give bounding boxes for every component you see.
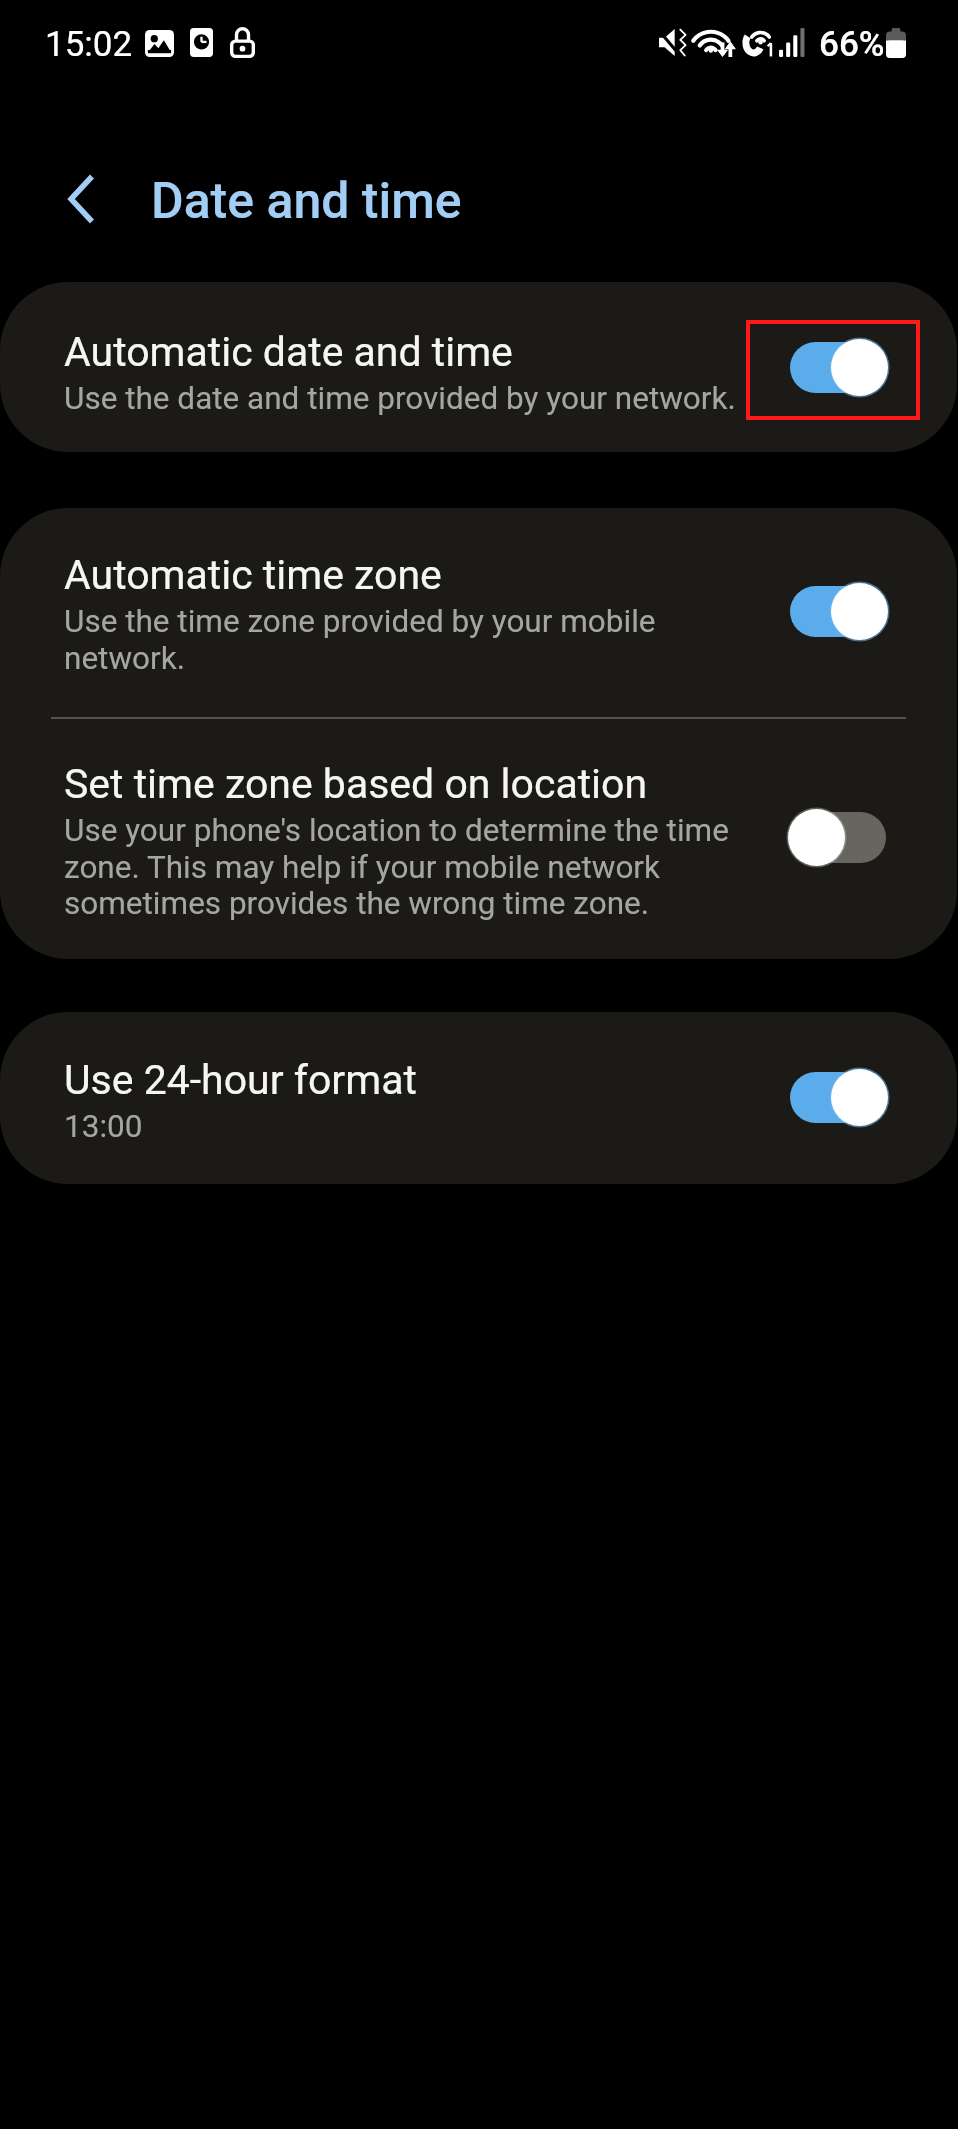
staticText: Automatic date and time: [64, 328, 513, 376]
staticText: Use your phone's location to determine t…: [64, 812, 764, 921]
button[interactable]: Use 24-hour format: [0, 1012, 957, 1184]
button[interactable]: Automatic date and time: [0, 282, 957, 452]
button[interactable]: Switch off: [790, 812, 886, 863]
button[interactable]: Switch on: [790, 586, 886, 637]
staticText: Date and time: [151, 172, 462, 231]
staticText: Use 24-hour format: [64, 1056, 417, 1104]
button[interactable]: Switch on: [790, 342, 886, 393]
staticText: 13:00: [64, 1108, 143, 1145]
button[interactable]: Navigate up: [40, 157, 124, 241]
button[interactable]: Automatic time zone: [0, 508, 957, 717]
button[interactable]: Switch on: [790, 1072, 886, 1123]
staticText: Use the date and time provided by your n…: [64, 380, 736, 417]
staticText: 66%: [819, 24, 885, 65]
staticText: Set time zone based on location: [64, 760, 648, 808]
staticText: Automatic time zone: [64, 551, 442, 599]
button[interactable]: Set time zone based on location: [0, 719, 957, 959]
staticText: Use the time zone provided by your mobil…: [64, 603, 724, 676]
staticText: 15:02: [45, 24, 133, 65]
